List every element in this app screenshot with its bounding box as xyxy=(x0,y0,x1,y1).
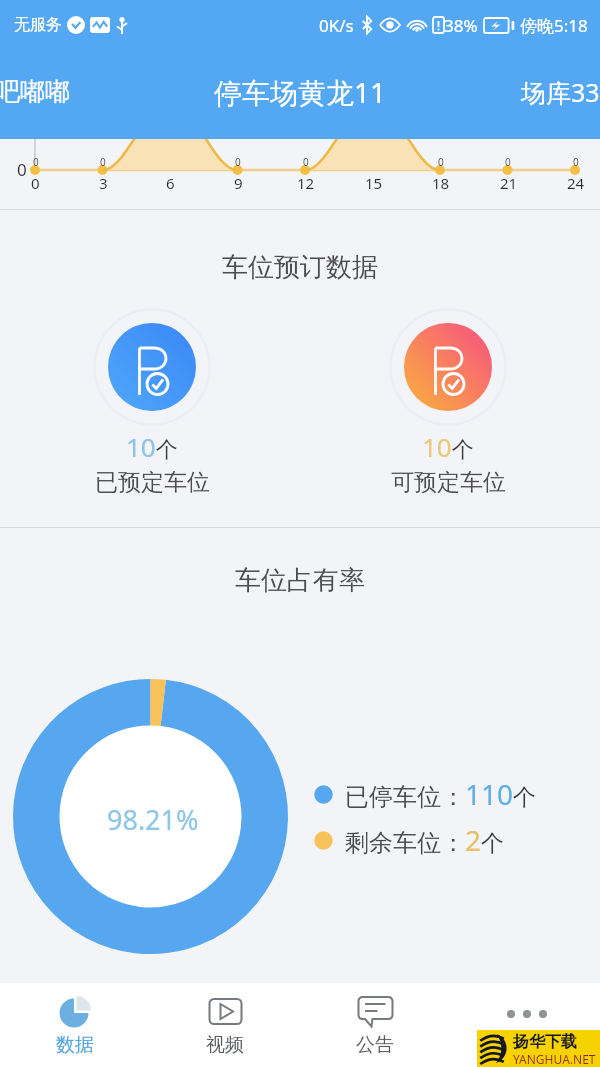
staticText: 已停车位：110个 xyxy=(345,775,537,813)
staticText: 吧嘟嘟 xyxy=(0,76,70,107)
staticText: 0 xyxy=(31,173,40,193)
button[interactable]: 停车场黄龙11 xyxy=(214,50,387,139)
staticText: 傍晚5:18 xyxy=(520,14,588,37)
button[interactable]: 数据 xyxy=(0,983,150,1067)
staticText: 10个 xyxy=(422,429,474,464)
staticText: 21 xyxy=(500,173,518,193)
staticText: 0 xyxy=(235,155,241,169)
staticText: 0 xyxy=(438,155,444,169)
staticText: 0 xyxy=(505,155,511,169)
button[interactable]: 更多 xyxy=(450,983,600,1067)
staticText: 0K/s xyxy=(319,14,354,37)
staticText: YANGHUA.NET xyxy=(513,1051,596,1067)
staticText: 公告 xyxy=(356,1033,394,1057)
button[interactable]: 场库33 xyxy=(521,50,600,139)
button[interactable]: 吧嘟嘟 xyxy=(0,50,90,139)
staticText: 视频 xyxy=(206,1033,244,1057)
button[interactable]: 视频 xyxy=(150,983,300,1067)
staticText: 9 xyxy=(234,173,243,193)
staticText: 24 xyxy=(567,173,585,193)
staticText: 可预定车位 xyxy=(391,468,506,497)
button[interactable]: 已停车位：110个 xyxy=(314,775,537,813)
button[interactable]: 10个 xyxy=(373,305,523,497)
staticText: 车位预订数据 xyxy=(222,251,378,284)
staticText: 15 xyxy=(365,173,383,193)
staticText: 0 xyxy=(303,155,309,169)
staticText: 车位占有率 xyxy=(235,564,365,597)
staticText: 38% xyxy=(444,14,478,37)
staticText: 扬华下载 xyxy=(513,1032,577,1052)
button[interactable]: 10个 xyxy=(77,305,227,497)
staticText: 数据 xyxy=(56,1033,94,1057)
staticText: 0 xyxy=(17,158,27,181)
staticText: 场库33 xyxy=(521,75,600,109)
staticText: 0 xyxy=(33,155,39,169)
staticText: 10个 xyxy=(126,429,178,464)
staticText: 停车场黄龙11 xyxy=(214,73,387,111)
button[interactable]: 公告 xyxy=(300,983,450,1067)
staticText: 18 xyxy=(432,173,450,193)
staticText: 98.21% xyxy=(107,801,199,838)
staticText: 剩余车位：2个 xyxy=(345,821,505,859)
staticText: 6 xyxy=(166,173,175,193)
staticText: 0 xyxy=(573,155,579,169)
staticText: 12 xyxy=(297,173,315,193)
staticText: 0 xyxy=(100,155,106,169)
staticText: 3 xyxy=(99,173,108,193)
button[interactable]: 剩余车位：2个 xyxy=(314,821,505,859)
staticText: 无服务 xyxy=(14,15,62,35)
staticText: 已预定车位 xyxy=(95,468,210,497)
